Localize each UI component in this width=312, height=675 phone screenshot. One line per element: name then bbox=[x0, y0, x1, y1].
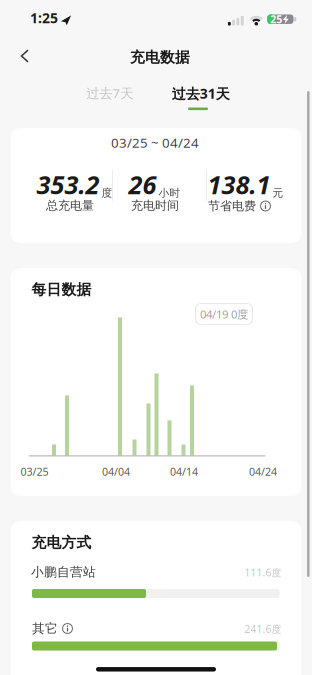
staticText: 小鹏自营站 bbox=[31, 564, 96, 580]
staticText: 241.6度 bbox=[244, 622, 281, 636]
staticText: 04/19 0度 bbox=[200, 306, 248, 322]
staticText: 小时 bbox=[158, 186, 180, 200]
staticText: 充电数据 bbox=[130, 48, 190, 67]
button[interactable]: 返回 bbox=[20, 49, 29, 63]
staticText: 25 bbox=[270, 12, 282, 26]
staticText: 充电方式 bbox=[31, 533, 91, 552]
staticText: 过去7天 bbox=[86, 84, 133, 102]
staticText: 03/25 ~ 04/24 bbox=[111, 133, 199, 152]
staticText: 04/04 bbox=[102, 464, 130, 479]
staticText: 过去31天 bbox=[172, 84, 230, 103]
staticText: 每日数据 bbox=[31, 280, 91, 299]
staticText: 节省电费 bbox=[208, 198, 256, 213]
staticText: 充电时间 bbox=[131, 198, 179, 213]
button[interactable]: 过去31天 bbox=[172, 84, 230, 103]
staticText: 04/24 bbox=[249, 464, 277, 479]
staticText: 353.2 bbox=[36, 167, 99, 202]
staticText: 总充电量 bbox=[46, 198, 94, 213]
staticText: 1:25 bbox=[30, 8, 58, 27]
button[interactable]: 其它充电方式说明 bbox=[62, 623, 73, 634]
staticText: 03/25 bbox=[20, 464, 48, 479]
staticText: 度 bbox=[101, 186, 112, 200]
staticText: 138.1 bbox=[207, 167, 270, 202]
staticText: 111.6度 bbox=[244, 566, 281, 579]
staticText: 04/14 bbox=[170, 464, 198, 479]
staticText: 其它 bbox=[32, 620, 58, 636]
button[interactable]: 过去7天 bbox=[86, 84, 133, 102]
staticText: 元 bbox=[272, 186, 283, 200]
button[interactable]: 节省电费说明 bbox=[260, 200, 271, 211]
staticText: 26 bbox=[128, 167, 156, 202]
